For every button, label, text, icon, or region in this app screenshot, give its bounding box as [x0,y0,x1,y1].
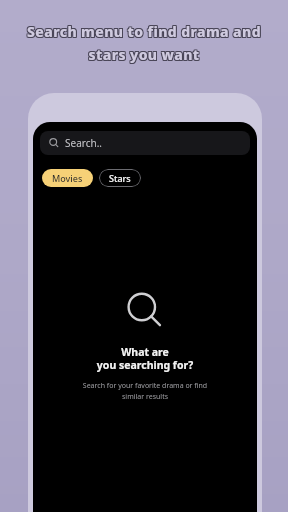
staticText: Movies [52,172,83,184]
button[interactable]: Stars [99,169,141,187]
button[interactable]: Search.. [40,131,250,155]
staticText: Search menu to find drama and stars you … [0,23,288,65]
staticText: Search menu to find drama and stars you … [0,22,287,64]
other: Search [125,291,165,331]
staticText: Search menu to find drama and stars you … [0,21,287,63]
staticText: What are you searching for? [33,345,257,372]
staticText: Stars [109,172,131,184]
staticText: Search menu to find drama and stars you … [0,23,287,65]
staticText: Search menu to find drama and stars you … [1,21,288,63]
button[interactable]: Movies [42,169,93,187]
staticText: Search.. [65,136,103,150]
staticText: Search menu to find drama and stars you … [0,22,288,64]
staticText: Search for your favorite drama or find s… [45,381,245,401]
staticText: Search menu to find drama and stars you … [1,23,288,65]
staticText: Search menu to find drama and stars you … [0,21,288,63]
staticText: Search menu to find drama and stars you … [1,22,288,64]
